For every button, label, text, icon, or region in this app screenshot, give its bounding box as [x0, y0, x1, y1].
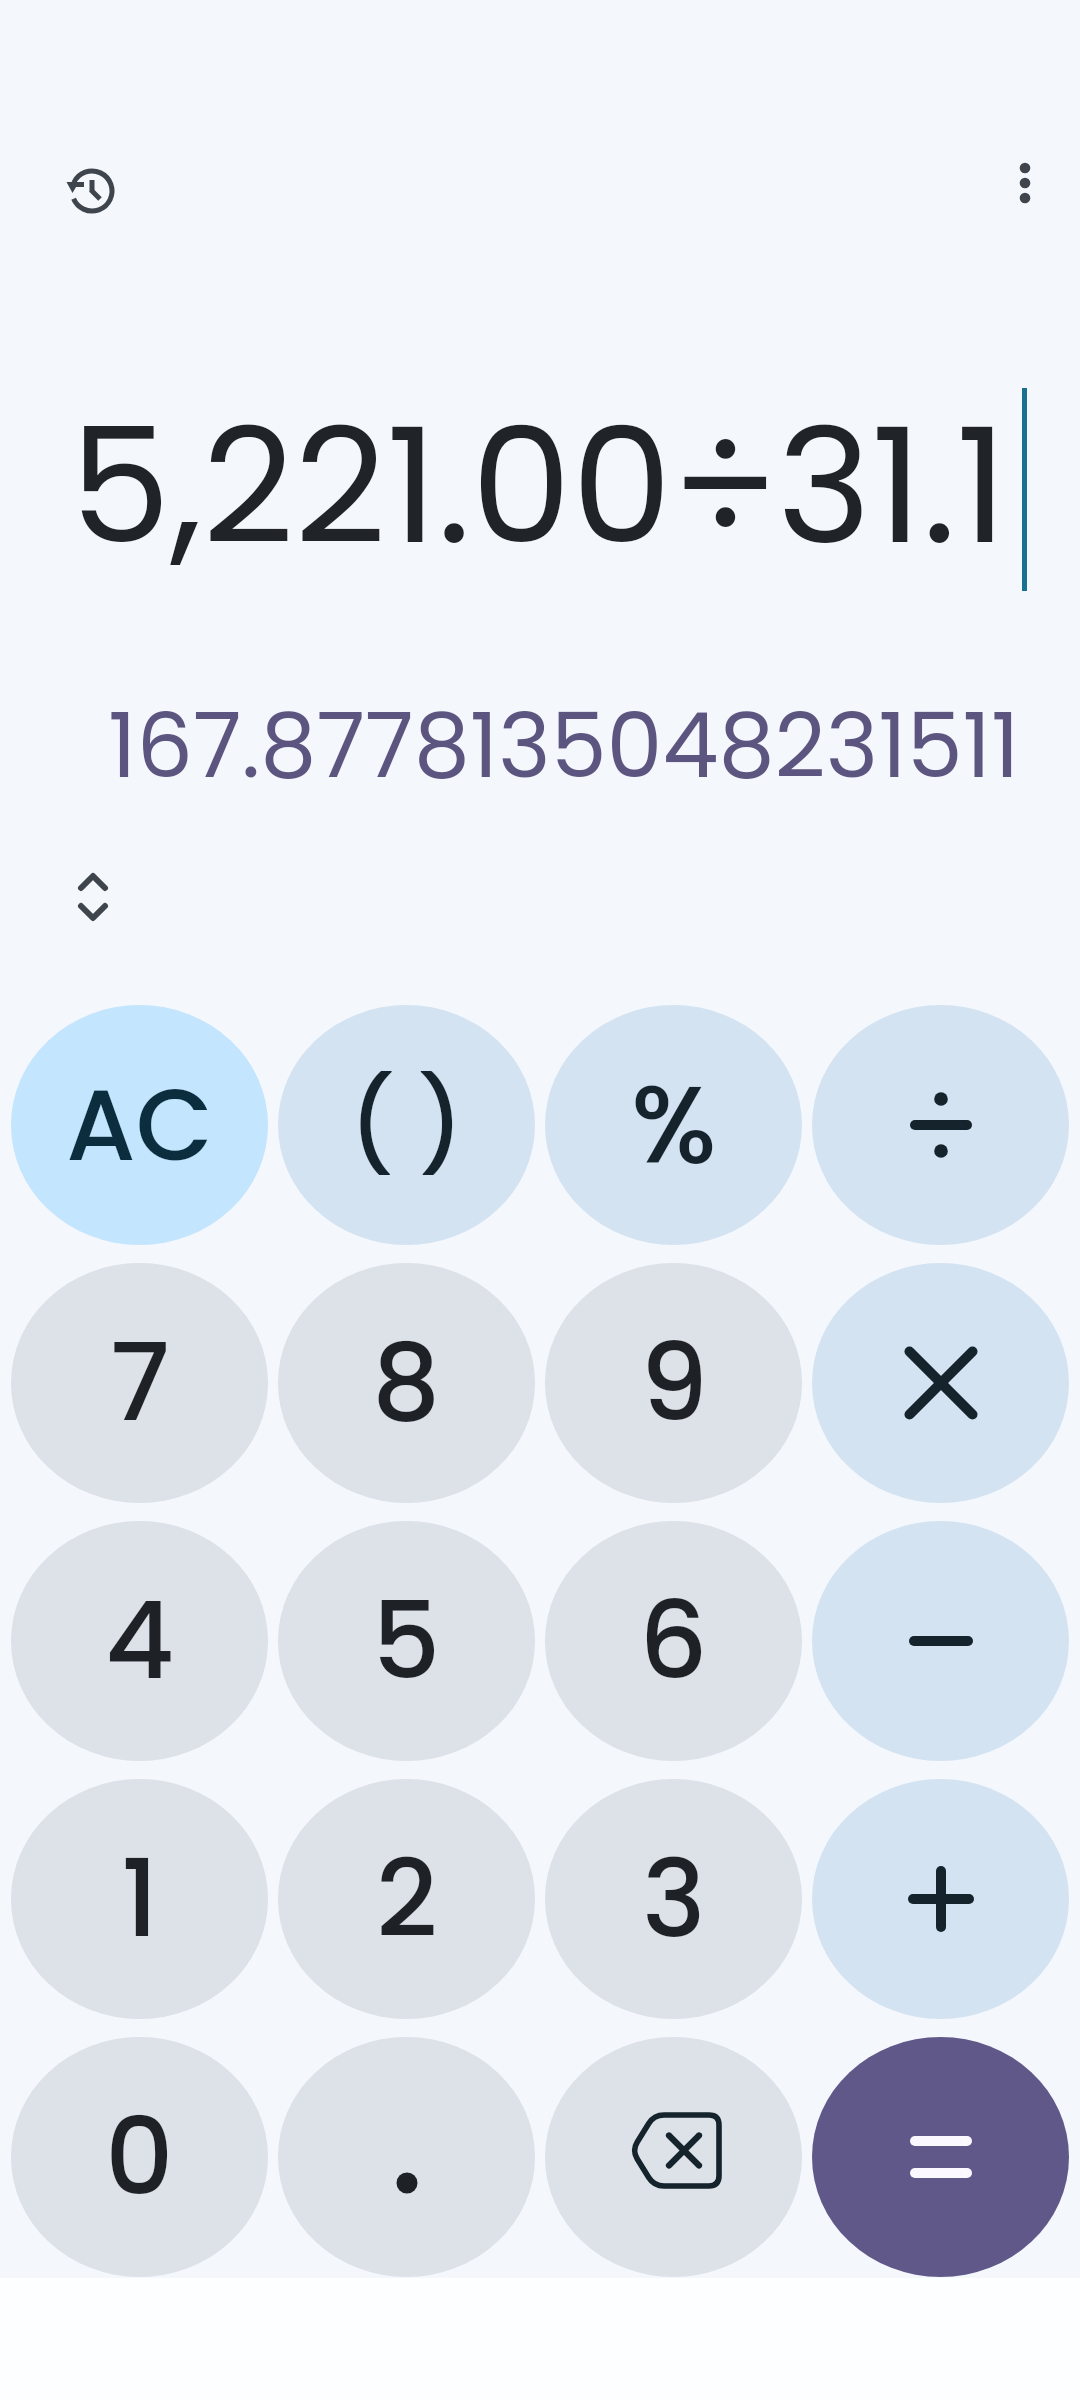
staticText: 5,221.00÷31.1 — [70, 374, 1008, 579]
button[interactable] — [812, 1005, 1069, 1245]
button[interactable] — [812, 1263, 1069, 1503]
staticText: ( ) — [349, 1061, 464, 1190]
button[interactable]: 3 — [545, 1779, 802, 2019]
button[interactable]: ( ) — [278, 1005, 535, 1245]
button[interactable] — [997, 155, 1053, 211]
staticText: 4 — [105, 1566, 175, 1716]
button[interactable]: 7 — [11, 1263, 268, 1503]
button[interactable] — [545, 2037, 802, 2277]
button[interactable]: AC — [11, 1005, 268, 1245]
staticText: 2 — [376, 1824, 438, 1974]
button[interactable] — [62, 162, 118, 218]
staticText: 3 — [642, 1824, 706, 1974]
button[interactable]: 6 — [545, 1521, 802, 1761]
button[interactable]: % — [545, 1005, 802, 1245]
button[interactable]: 0 — [11, 2037, 268, 2277]
button[interactable]: 2 — [278, 1779, 535, 2019]
button[interactable]: 5 — [278, 1521, 535, 1761]
button[interactable]: 4 — [11, 1521, 268, 1761]
staticText: AC — [66, 1055, 213, 1195]
staticText: 5 — [372, 1566, 441, 1716]
staticText: 9 — [640, 1308, 708, 1458]
staticText: 6 — [639, 1566, 708, 1716]
button[interactable]: 9 — [545, 1263, 802, 1503]
button[interactable]: 1 — [11, 1779, 268, 2019]
staticText: 7 — [110, 1308, 170, 1458]
button[interactable]: 8 — [278, 1263, 535, 1503]
staticText: 167.8778135048231511 — [108, 684, 1020, 796]
staticText: 8 — [372, 1308, 441, 1458]
button[interactable] — [69, 873, 117, 921]
button[interactable] — [812, 2037, 1069, 2277]
staticText: % — [631, 1050, 717, 1201]
button[interactable] — [812, 1521, 1069, 1761]
staticText: 0 — [105, 2082, 174, 2232]
button[interactable] — [278, 2037, 535, 2277]
staticText: 1 — [121, 1824, 159, 1974]
button[interactable] — [812, 1779, 1069, 2019]
